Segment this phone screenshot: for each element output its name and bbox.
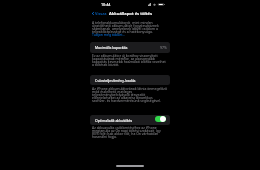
- button[interactable]: Maximális kapacitás: [90, 42, 170, 53]
- button[interactable]: Vissza: [92, 11, 107, 16]
- button[interactable]: A telefonakkumulátorok, mint minden újra…: [92, 20, 167, 37]
- button[interactable]: Optimalizált akkutöltés: [90, 115, 170, 125]
- staticText: 97%: [160, 45, 167, 50]
- button[interactable]: Optimalizált akkutöltés kapcsoló: [155, 116, 166, 122]
- staticText: Akkuállapot és töltés: [109, 11, 152, 17]
- staticText: Csúcsteljesítmény-leadás: [95, 78, 136, 83]
- staticText: Maximális kapacitás: [95, 45, 128, 50]
- button[interactable]: Csúcsteljesítmény-leadás: [90, 75, 170, 85]
- staticText: Optimalizált akkutöltés: [95, 118, 133, 123]
- staticText: 10:44: [101, 2, 111, 7]
- staticText: Vissza: [95, 11, 107, 16]
- staticText: Az iPhone akkumulátorának látnia önmegel…: [92, 86, 167, 103]
- staticText: Az akkuavulás csökkentéséhez az iPhone m…: [92, 125, 167, 139]
- staticText: Ez az akkumulátor új korához viszonyítot…: [92, 53, 167, 67]
